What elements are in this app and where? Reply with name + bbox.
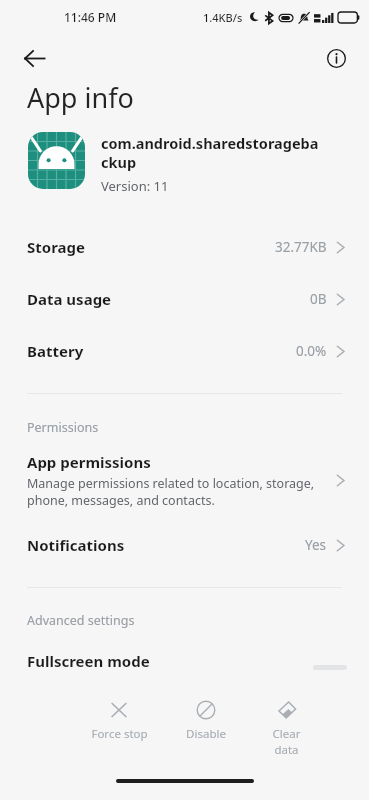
staticText: 11:46 PM xyxy=(64,9,117,25)
staticText: Disable xyxy=(186,726,226,742)
button[interactable]: Clear data xyxy=(260,697,313,761)
staticText: Manage permissions related to location, … xyxy=(27,475,315,509)
staticText: Notifications xyxy=(27,535,125,555)
staticText: 32.77KB xyxy=(275,238,327,256)
button[interactable]: Back xyxy=(12,36,56,80)
staticText: 0.0% xyxy=(296,342,327,360)
button[interactable]: Disable xyxy=(173,697,239,745)
button[interactable]: Battery xyxy=(0,325,369,377)
staticText: Permissions xyxy=(27,419,99,436)
button[interactable]: App permissions xyxy=(0,446,369,519)
staticText: Storage xyxy=(27,237,85,257)
staticText: Advanced settings xyxy=(27,612,135,629)
staticText: Clear data xyxy=(260,726,313,758)
staticText: Fullscreen mode xyxy=(27,651,150,671)
button[interactable]: Fullscreen mode xyxy=(0,639,369,683)
staticText: Force stop xyxy=(91,726,148,742)
staticText: Battery xyxy=(27,341,84,361)
staticText: 1.4KB/s xyxy=(203,10,243,25)
button[interactable]: App details info xyxy=(316,38,356,78)
staticText: Version: 11 xyxy=(101,177,169,195)
button[interactable]: Notifications xyxy=(0,519,369,571)
button[interactable]: Storage xyxy=(0,221,369,273)
staticText: Data usage xyxy=(27,289,112,309)
button[interactable]: Data usage xyxy=(0,273,369,325)
staticText: App info xyxy=(27,79,134,116)
staticText: App permissions xyxy=(27,452,151,472)
button[interactable]: Force stop xyxy=(86,697,152,745)
staticText: 0B xyxy=(310,290,327,308)
staticText: Yes xyxy=(305,536,327,554)
staticText: com.android.sharedstorageba ckup xyxy=(101,133,319,172)
